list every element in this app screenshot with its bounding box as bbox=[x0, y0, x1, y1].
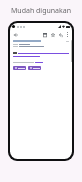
button[interactable] bbox=[13, 52, 69, 54]
staticText: Mudah digunakan bbox=[0, 6, 82, 16]
button[interactable]: More options bbox=[65, 31, 70, 38]
button[interactable]: Archive bbox=[41, 31, 48, 38]
button[interactable]: Bantuan bbox=[28, 66, 41, 70]
button[interactable] bbox=[35, 62, 43, 63]
button[interactable]: Star bbox=[49, 31, 56, 38]
button[interactable]: Daftar bbox=[13, 66, 26, 70]
button[interactable]: Back bbox=[12, 31, 19, 38]
button[interactable]: Reply bbox=[57, 31, 64, 38]
